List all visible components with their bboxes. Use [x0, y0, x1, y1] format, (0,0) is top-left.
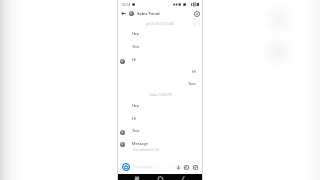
button[interactable]: Hi [132, 57, 136, 62]
button[interactable]: Text message [120, 162, 176, 172]
staticText: Sales Trend [137, 11, 160, 17]
button[interactable]: Hi [132, 116, 136, 121]
staticText: Today 12:48 PM [149, 93, 172, 97]
staticText: Message [132, 141, 149, 146]
staticText: Test [132, 44, 140, 49]
staticText: Text message [133, 165, 153, 169]
staticText: Jan 24, 2023, 10:12 AM [146, 22, 174, 26]
button[interactable]: Message [132, 141, 149, 146]
button[interactable]: Back [180, 176, 187, 180]
button[interactable]: Test [188, 81, 196, 86]
button[interactable]: Back [119, 9, 128, 18]
button[interactable]: Test [132, 44, 140, 49]
staticText: Hey [132, 103, 139, 108]
button[interactable]: Hey [132, 31, 139, 36]
button[interactable]: Gallery [183, 164, 190, 171]
staticText: 10:04 [121, 2, 131, 7]
button[interactable]: Test [132, 128, 140, 133]
staticText: Test [188, 81, 196, 86]
button[interactable]: Voice message [175, 164, 182, 171]
staticText: Hi [132, 116, 136, 121]
staticText: Hi [132, 57, 136, 62]
button[interactable]: Stickers [192, 164, 199, 171]
button[interactable]: Hi [192, 69, 196, 74]
button[interactable]: Recent apps [133, 176, 141, 180]
staticText: Test [132, 128, 140, 133]
button[interactable]: Home [156, 176, 165, 180]
staticText: Hey [132, 31, 139, 36]
button[interactable]: Camera [122, 163, 130, 171]
button[interactable]: Conversation details [192, 9, 202, 19]
staticText: Chat delivered at 1:04 [133, 148, 159, 151]
button[interactable]: Hey [132, 103, 139, 108]
staticText: Hi [192, 69, 196, 74]
